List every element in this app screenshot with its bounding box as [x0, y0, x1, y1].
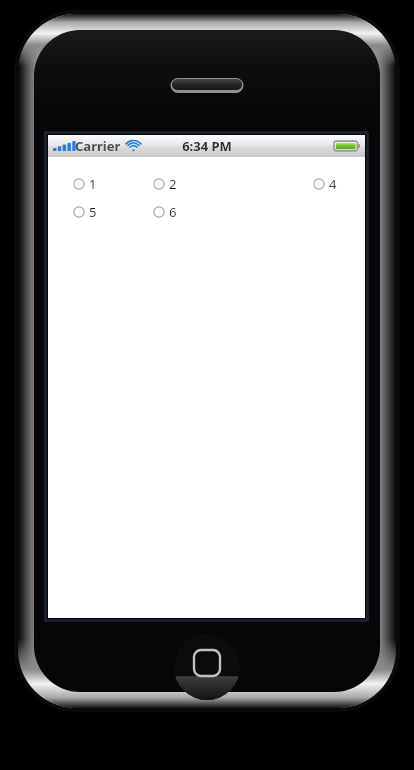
- staticText: 4: [329, 175, 337, 193]
- staticText: Carrier: [75, 137, 121, 155]
- staticText: 1: [89, 175, 97, 193]
- staticText: 6: [169, 203, 177, 221]
- staticText: 2: [169, 175, 177, 193]
- staticText: 5: [89, 203, 97, 221]
- button[interactable]: 2: [153, 175, 177, 193]
- button[interactable]: 5: [73, 203, 97, 221]
- button[interactable]: 4: [313, 175, 337, 193]
- button[interactable]: 6: [153, 203, 177, 221]
- button[interactable]: 1: [73, 175, 97, 193]
- staticText: 6:34 PM: [182, 137, 232, 155]
